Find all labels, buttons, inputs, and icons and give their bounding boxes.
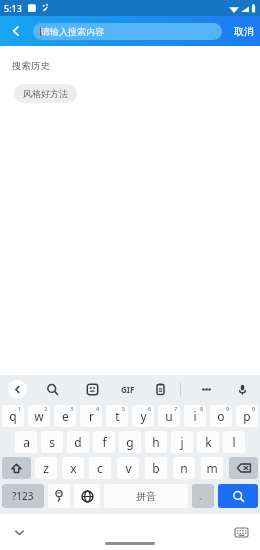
staticText: l bbox=[232, 434, 236, 450]
staticText: 0 bbox=[252, 405, 256, 412]
button[interactable]: z bbox=[35, 457, 57, 479]
button[interactable]: h bbox=[145, 431, 167, 453]
button[interactable]: u bbox=[158, 405, 180, 427]
staticText: t bbox=[115, 408, 120, 424]
staticText: GIF bbox=[121, 384, 135, 395]
staticText: u bbox=[165, 408, 173, 424]
button[interactable]: 拼音 bbox=[104, 484, 188, 508]
staticText: v bbox=[125, 460, 132, 476]
button[interactable]: Clipboard bbox=[150, 379, 170, 399]
button[interactable]: i bbox=[184, 405, 206, 427]
button[interactable]: p bbox=[236, 405, 258, 427]
button[interactable]: a bbox=[15, 431, 37, 453]
staticText: k bbox=[205, 434, 212, 450]
button[interactable]: Search bbox=[42, 379, 62, 399]
button[interactable]: s bbox=[41, 431, 63, 453]
staticText: c bbox=[97, 460, 103, 476]
button[interactable]: g bbox=[119, 431, 141, 453]
button[interactable]: Shift bbox=[2, 457, 31, 479]
staticText: 6 bbox=[148, 405, 152, 412]
staticText: 风格好方法 bbox=[23, 88, 68, 99]
button[interactable]: d bbox=[67, 431, 89, 453]
button[interactable]: Back bbox=[2, 17, 30, 45]
button[interactable]: e bbox=[54, 405, 76, 427]
staticText: 请输入搜索内容 bbox=[41, 26, 104, 37]
button[interactable]: Stickers bbox=[82, 379, 102, 399]
staticText: 3 bbox=[70, 405, 74, 412]
staticText: b bbox=[152, 460, 160, 476]
button[interactable]: t bbox=[106, 405, 128, 427]
button[interactable]: Change keyboard language bbox=[74, 484, 100, 508]
staticText: 2 bbox=[44, 405, 48, 412]
button[interactable]: 请输入搜索内容 bbox=[33, 23, 222, 40]
button[interactable]: j bbox=[171, 431, 193, 453]
button[interactable]: Emoji and comma bbox=[48, 484, 70, 508]
staticText: 5 bbox=[122, 405, 126, 412]
button[interactable]: k bbox=[197, 431, 219, 453]
staticText: j bbox=[180, 434, 184, 450]
staticText: n bbox=[180, 460, 188, 476]
button[interactable]: n bbox=[173, 457, 195, 479]
button[interactable]: o bbox=[210, 405, 232, 427]
button[interactable]: x bbox=[62, 457, 84, 479]
staticText: 5:13 bbox=[4, 2, 22, 14]
button[interactable]: Switch keyboard bbox=[230, 521, 252, 543]
button[interactable]: c bbox=[89, 457, 111, 479]
staticText: m bbox=[206, 460, 218, 476]
button[interactable]: v bbox=[117, 457, 139, 479]
button[interactable]: 风格好方法 bbox=[14, 84, 77, 103]
button[interactable]: y bbox=[132, 405, 154, 427]
button[interactable]: Voice input bbox=[232, 379, 252, 399]
staticText: q bbox=[9, 408, 17, 424]
button[interactable]: q bbox=[2, 405, 24, 427]
button[interactable]: r bbox=[80, 405, 102, 427]
button[interactable]: m bbox=[201, 457, 223, 479]
staticText: g bbox=[126, 434, 134, 450]
staticText: w bbox=[34, 408, 44, 424]
staticText: e bbox=[62, 408, 69, 424]
button[interactable]: Back bbox=[8, 380, 27, 399]
staticText: 4 bbox=[96, 405, 100, 412]
staticText: o bbox=[217, 408, 225, 424]
staticText: 取消 bbox=[234, 25, 254, 38]
staticText: s bbox=[49, 434, 55, 450]
button[interactable]: l bbox=[223, 431, 245, 453]
staticText: y bbox=[140, 408, 147, 424]
staticText: 。 bbox=[199, 491, 207, 501]
button[interactable]: ?123 bbox=[2, 484, 44, 508]
staticText: ?123 bbox=[12, 489, 34, 503]
staticText: 7 bbox=[174, 405, 178, 412]
staticText: d bbox=[74, 434, 82, 450]
staticText: 拼音 bbox=[136, 490, 156, 503]
staticText: 9 bbox=[226, 405, 230, 412]
staticText: i bbox=[193, 408, 197, 424]
staticText: 8 bbox=[200, 405, 204, 412]
button[interactable]: Backspace bbox=[229, 457, 258, 479]
button[interactable]: Period bbox=[192, 484, 214, 508]
button[interactable]: Hide keyboard bbox=[8, 521, 30, 543]
button[interactable]: 取消 bbox=[231, 22, 257, 41]
staticText: a bbox=[23, 434, 30, 450]
button[interactable]: More options bbox=[196, 379, 216, 399]
staticText: 1 bbox=[18, 405, 22, 412]
button[interactable]: w bbox=[28, 405, 50, 427]
button[interactable]: Search bbox=[218, 484, 258, 508]
button[interactable]: b bbox=[145, 457, 167, 479]
staticText: p bbox=[243, 408, 251, 424]
staticText: x bbox=[70, 460, 77, 476]
staticText: r bbox=[89, 408, 94, 424]
button[interactable]: GIF bbox=[116, 379, 140, 399]
staticText: h bbox=[152, 434, 160, 450]
button[interactable]: f bbox=[93, 431, 115, 453]
staticText: 搜索历史 bbox=[12, 60, 50, 72]
staticText: f bbox=[102, 434, 107, 450]
staticText: z bbox=[43, 460, 49, 476]
